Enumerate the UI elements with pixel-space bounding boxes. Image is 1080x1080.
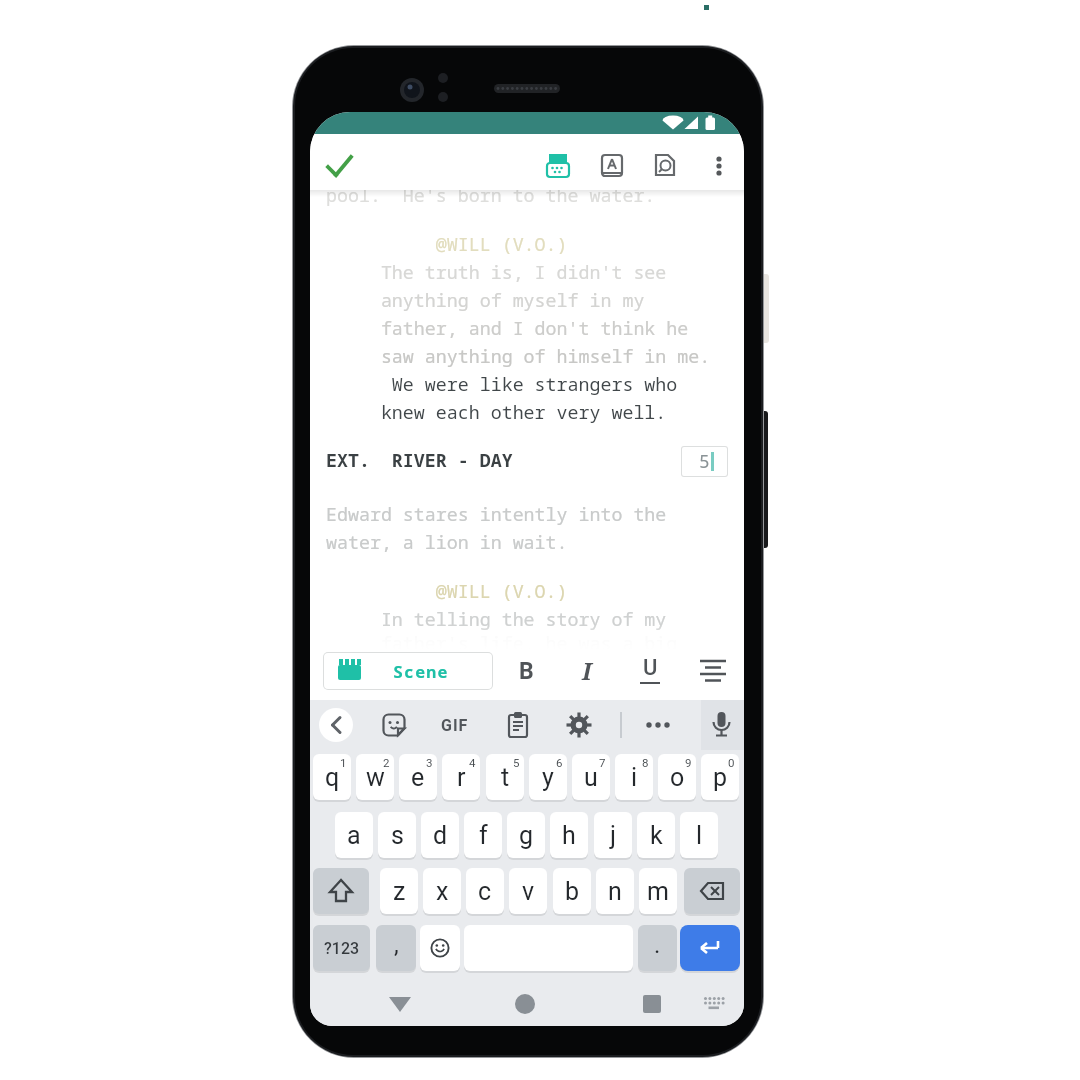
staticText: B bbox=[519, 658, 534, 685]
staticText: , bbox=[394, 931, 399, 959]
button[interactable] bbox=[313, 925, 370, 971]
button[interactable] bbox=[701, 148, 737, 184]
button[interactable] bbox=[421, 812, 459, 858]
staticText: v bbox=[522, 877, 535, 906]
button[interactable] bbox=[510, 989, 540, 1019]
button[interactable] bbox=[442, 754, 480, 800]
staticText: x bbox=[436, 877, 449, 906]
button[interactable] bbox=[486, 754, 524, 800]
button[interactable] bbox=[335, 812, 373, 858]
button[interactable] bbox=[378, 709, 410, 741]
staticText: m bbox=[647, 877, 669, 906]
staticText: u bbox=[584, 763, 598, 792]
staticText: e bbox=[411, 763, 425, 792]
staticText: n bbox=[608, 877, 622, 906]
button[interactable] bbox=[550, 812, 588, 858]
button[interactable] bbox=[699, 989, 729, 1019]
button[interactable] bbox=[680, 812, 718, 858]
staticText: 8 bbox=[642, 756, 649, 769]
button[interactable] bbox=[399, 754, 437, 800]
button[interactable] bbox=[385, 989, 415, 1019]
button[interactable] bbox=[502, 709, 534, 741]
button[interactable] bbox=[464, 812, 502, 858]
button[interactable] bbox=[637, 989, 667, 1019]
button[interactable] bbox=[684, 868, 740, 914]
staticText: f bbox=[479, 821, 488, 850]
staticText: g bbox=[519, 821, 534, 850]
button[interactable] bbox=[680, 925, 740, 971]
button[interactable] bbox=[540, 148, 576, 184]
button[interactable] bbox=[658, 754, 696, 800]
button[interactable] bbox=[697, 652, 729, 688]
staticText: 5 bbox=[699, 449, 710, 474]
button[interactable] bbox=[376, 925, 416, 971]
button[interactable] bbox=[553, 868, 591, 914]
staticText: I bbox=[582, 654, 592, 687]
staticText: d bbox=[433, 821, 448, 850]
button[interactable] bbox=[313, 754, 351, 800]
button[interactable] bbox=[466, 868, 504, 914]
staticText: 2 bbox=[383, 756, 390, 769]
button[interactable] bbox=[701, 754, 739, 800]
staticText: In telling the story of my bbox=[326, 606, 667, 631]
staticText: r bbox=[457, 763, 466, 792]
button[interactable] bbox=[572, 754, 610, 800]
staticText: b bbox=[565, 877, 580, 906]
button[interactable] bbox=[594, 148, 630, 184]
staticText: s bbox=[391, 821, 404, 850]
staticText: 6 bbox=[556, 756, 563, 769]
button[interactable] bbox=[642, 709, 674, 741]
staticText: anything of myself in my bbox=[326, 287, 645, 312]
button[interactable] bbox=[321, 148, 357, 184]
staticText: ?123 bbox=[324, 939, 360, 958]
button[interactable] bbox=[705, 709, 737, 741]
button[interactable] bbox=[420, 925, 460, 971]
staticText: father, and I don't think he bbox=[326, 315, 689, 340]
staticText: U bbox=[643, 655, 658, 681]
button[interactable] bbox=[647, 148, 683, 184]
staticText: l bbox=[696, 821, 703, 850]
staticText: 3 bbox=[426, 756, 433, 769]
button[interactable] bbox=[615, 754, 653, 800]
button[interactable] bbox=[639, 868, 677, 914]
button[interactable]: 5 bbox=[681, 446, 728, 477]
button[interactable] bbox=[563, 709, 595, 741]
staticText: EXT. RIVER - DAY bbox=[326, 447, 513, 472]
staticText: h bbox=[562, 821, 576, 850]
button[interactable] bbox=[509, 868, 547, 914]
staticText: a bbox=[347, 821, 361, 850]
staticText: pool. He's born to the water. bbox=[326, 182, 656, 207]
staticText: q bbox=[325, 763, 340, 792]
staticText: . bbox=[654, 931, 661, 959]
staticText: k bbox=[650, 821, 663, 850]
staticText: w bbox=[366, 763, 385, 792]
staticText: y bbox=[542, 763, 554, 792]
staticText: z bbox=[393, 877, 406, 906]
staticText: 5 bbox=[513, 756, 520, 769]
staticText: 7 bbox=[599, 756, 606, 769]
staticText: Edward stares intently into the bbox=[326, 501, 667, 526]
button[interactable] bbox=[507, 812, 545, 858]
button[interactable] bbox=[319, 708, 353, 742]
staticText: The truth is, I didn't see bbox=[326, 259, 667, 284]
staticText: j bbox=[610, 821, 616, 850]
button[interactable]: Scene bbox=[323, 652, 493, 690]
staticText: We were like strangers who bbox=[326, 371, 678, 396]
button[interactable] bbox=[529, 754, 567, 800]
button[interactable] bbox=[423, 868, 461, 914]
button[interactable] bbox=[638, 925, 677, 971]
button[interactable] bbox=[637, 812, 675, 858]
button[interactable] bbox=[380, 868, 418, 914]
button[interactable] bbox=[594, 812, 632, 858]
button[interactable] bbox=[596, 868, 634, 914]
staticText: 1 bbox=[340, 756, 347, 769]
button[interactable] bbox=[313, 868, 369, 914]
staticText: i bbox=[631, 763, 638, 792]
staticText: Scene bbox=[393, 660, 449, 682]
button[interactable] bbox=[356, 754, 394, 800]
staticText: o bbox=[670, 763, 685, 792]
button[interactable] bbox=[378, 812, 416, 858]
staticText: @WILL (V.O.) bbox=[326, 231, 568, 256]
staticText: father's life, he was a big bbox=[326, 630, 678, 655]
